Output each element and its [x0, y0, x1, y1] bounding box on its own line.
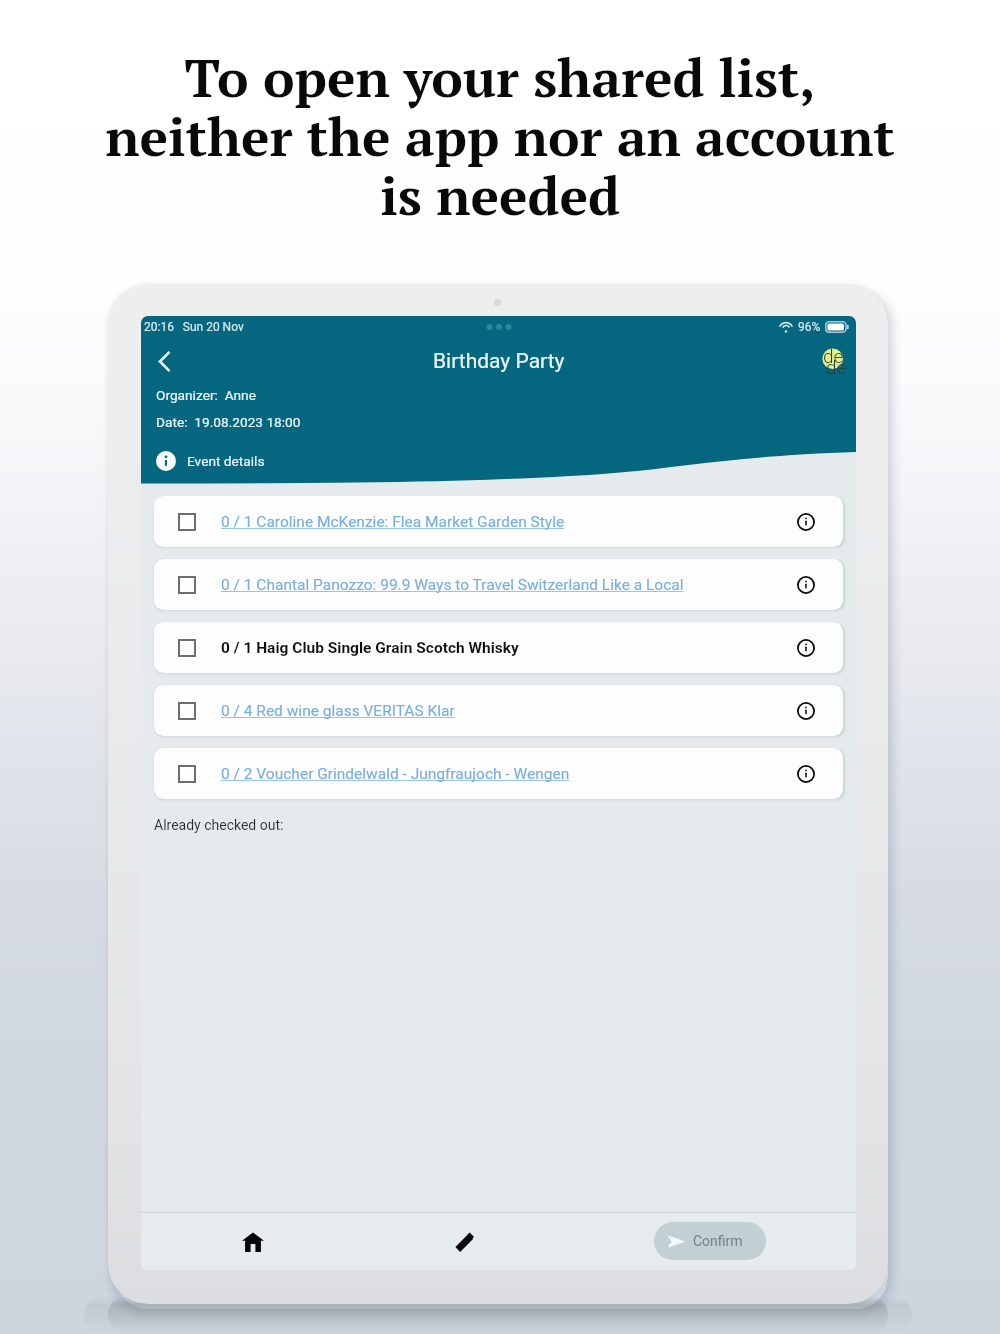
button[interactable]: Item details [784, 626, 828, 670]
staticText: To open your shared list, neither the ap… [36, 42, 964, 230]
button[interactable]: 0 / 1 Chantal Panozzo: 99.9 Ways to Trav… [154, 559, 843, 610]
button[interactable]: 0 / 1 Haig Club Single Grain Scotch Whis… [154, 622, 843, 673]
button[interactable]: Item details [784, 500, 828, 544]
staticText: Confirm [693, 1233, 743, 1249]
button[interactable]: 0 / 2 Voucher Grindelwald - Jungfraujoch… [154, 748, 843, 799]
staticText: Birthday Party [433, 349, 565, 374]
button[interactable]: 0 / 4 Red wine glass VERITAS Klar [154, 685, 843, 736]
staticText: Date: 19.08.2023 18:00 [156, 414, 301, 430]
staticText: de [826, 356, 847, 378]
button[interactable]: Home [213, 1213, 293, 1270]
button[interactable]: Event details [141, 448, 281, 474]
button[interactable]: dede logo [812, 343, 848, 379]
staticText: 0 / 4 Red wine glass VERITAS Klar [221, 702, 784, 720]
staticText: 0 / 1 Caroline McKenzie: Flea Market Gar… [221, 513, 784, 531]
button[interactable]: Edit [424, 1213, 504, 1270]
staticText: 0 / 1 Chantal Panozzo: 99.9 Ways to Trav… [221, 576, 784, 594]
staticText: 96% [798, 320, 821, 334]
button[interactable]: Item details [784, 689, 828, 733]
button[interactable]: Back [147, 344, 181, 378]
staticText: 0 / 1 Haig Club Single Grain Scotch Whis… [221, 639, 784, 657]
staticText: Event details [187, 453, 265, 469]
staticText: 0 / 2 Voucher Grindelwald - Jungfraujoch… [221, 765, 784, 783]
button[interactable]: Item details [784, 563, 828, 607]
button[interactable]: 0 / 1 Caroline McKenzie: Flea Market Gar… [154, 496, 843, 547]
staticText: Already checked out: [154, 817, 284, 833]
staticText: Organizer: Anne [156, 387, 256, 403]
button[interactable]: Confirm [654, 1222, 766, 1260]
staticText: de [823, 345, 844, 367]
staticText: 20:16 Sun 20 Nov [144, 320, 244, 334]
button[interactable]: Item details [784, 752, 828, 796]
